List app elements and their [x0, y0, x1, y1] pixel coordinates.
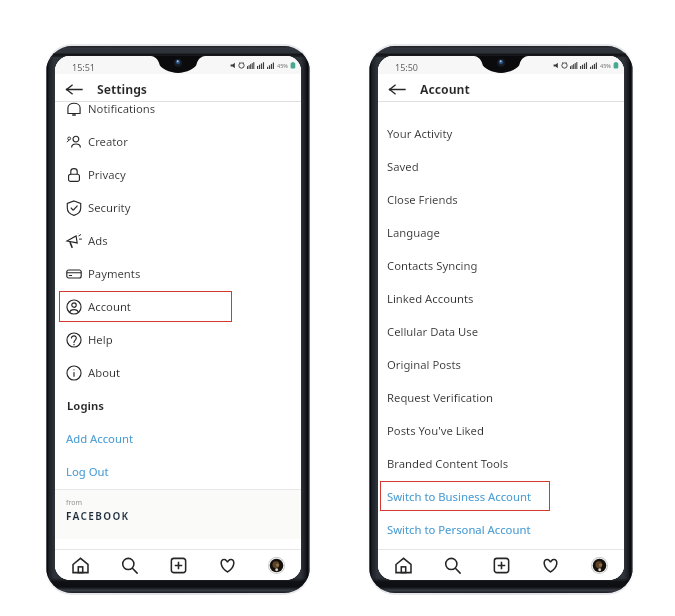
button[interactable]: Search	[105, 550, 154, 580]
button[interactable]: Back	[387, 79, 407, 99]
staticText: Creator	[88, 134, 128, 149]
button[interactable]: Branded Content Tools	[378, 447, 624, 480]
staticText: Posts You've Liked	[387, 423, 484, 438]
staticText: Original Posts	[387, 357, 462, 372]
staticText: 15:50	[395, 61, 419, 73]
button[interactable]: Back	[64, 79, 84, 99]
button[interactable]: Payments	[55, 257, 301, 290]
staticText: Cellular Data Use	[387, 324, 479, 339]
staticText: Payments	[88, 266, 141, 281]
button[interactable]: Add post	[154, 550, 203, 580]
staticText: Account	[88, 299, 131, 314]
staticText: Account	[420, 81, 470, 98]
button[interactable]: Activity	[203, 550, 252, 580]
button[interactable]: Linked Accounts	[378, 282, 624, 315]
staticText: About	[88, 365, 121, 380]
button[interactable]: Profile	[252, 550, 301, 580]
staticText: Add Account	[66, 431, 133, 446]
button[interactable]: Original Posts	[378, 348, 624, 381]
staticText: Language	[387, 225, 440, 240]
button[interactable]: Close Friends	[378, 183, 624, 216]
button[interactable]: Help	[55, 323, 301, 356]
staticText: FACEBOOK	[66, 509, 130, 523]
button[interactable]: About	[55, 356, 301, 389]
staticText: 15:51	[72, 61, 96, 73]
button[interactable]: Account	[55, 290, 301, 323]
button[interactable]: Security	[55, 191, 301, 224]
button[interactable]: Language	[378, 216, 624, 249]
staticText: Switch to Business Account	[387, 489, 531, 504]
button[interactable]: Home	[378, 550, 428, 580]
staticText: Contacts Syncing	[387, 258, 478, 273]
button[interactable]: Cellular Data Use	[378, 315, 624, 348]
staticText: 45%	[277, 62, 288, 69]
staticText: Request Verification	[387, 390, 493, 405]
staticText: Saved	[387, 159, 419, 174]
button[interactable]: Saved	[378, 150, 624, 183]
staticText: Ads	[88, 233, 108, 248]
button[interactable]: Switch to Business Account	[378, 480, 624, 513]
staticText: Settings	[97, 81, 147, 98]
button[interactable]: Profile	[575, 550, 624, 580]
staticText: Notifications	[88, 102, 156, 116]
staticText: Log Out	[66, 464, 109, 479]
button[interactable]: Your Activity	[378, 117, 624, 150]
staticText: Security	[88, 200, 131, 215]
button[interactable]: Creator	[55, 125, 301, 158]
staticText: 45%	[600, 62, 611, 69]
button[interactable]: Log Out	[55, 455, 301, 488]
button[interactable]: Privacy	[55, 158, 301, 191]
button[interactable]: Search	[428, 550, 477, 580]
staticText: Switch to Personal Account	[387, 522, 531, 537]
staticText: Close Friends	[387, 192, 458, 207]
staticText: Help	[88, 332, 113, 347]
button[interactable]: Activity	[526, 550, 575, 580]
staticText: Your Activity	[387, 126, 453, 141]
button[interactable]: Add Account	[55, 422, 301, 455]
button[interactable]: Home	[55, 550, 105, 580]
staticText: Linked Accounts	[387, 291, 474, 306]
button[interactable]: Ads	[55, 224, 301, 257]
staticText: Logins	[67, 398, 104, 413]
button[interactable]: Switch to Personal Account	[378, 513, 624, 546]
staticText: Privacy	[88, 167, 126, 182]
button[interactable]: Add post	[477, 550, 526, 580]
button[interactable]: Request Verification	[378, 381, 624, 414]
button[interactable]: Notifications	[55, 102, 301, 125]
staticText: from	[66, 498, 82, 508]
button[interactable]: Contacts Syncing	[378, 249, 624, 282]
button[interactable]: Posts You've Liked	[378, 414, 624, 447]
staticText: Branded Content Tools	[387, 456, 509, 471]
